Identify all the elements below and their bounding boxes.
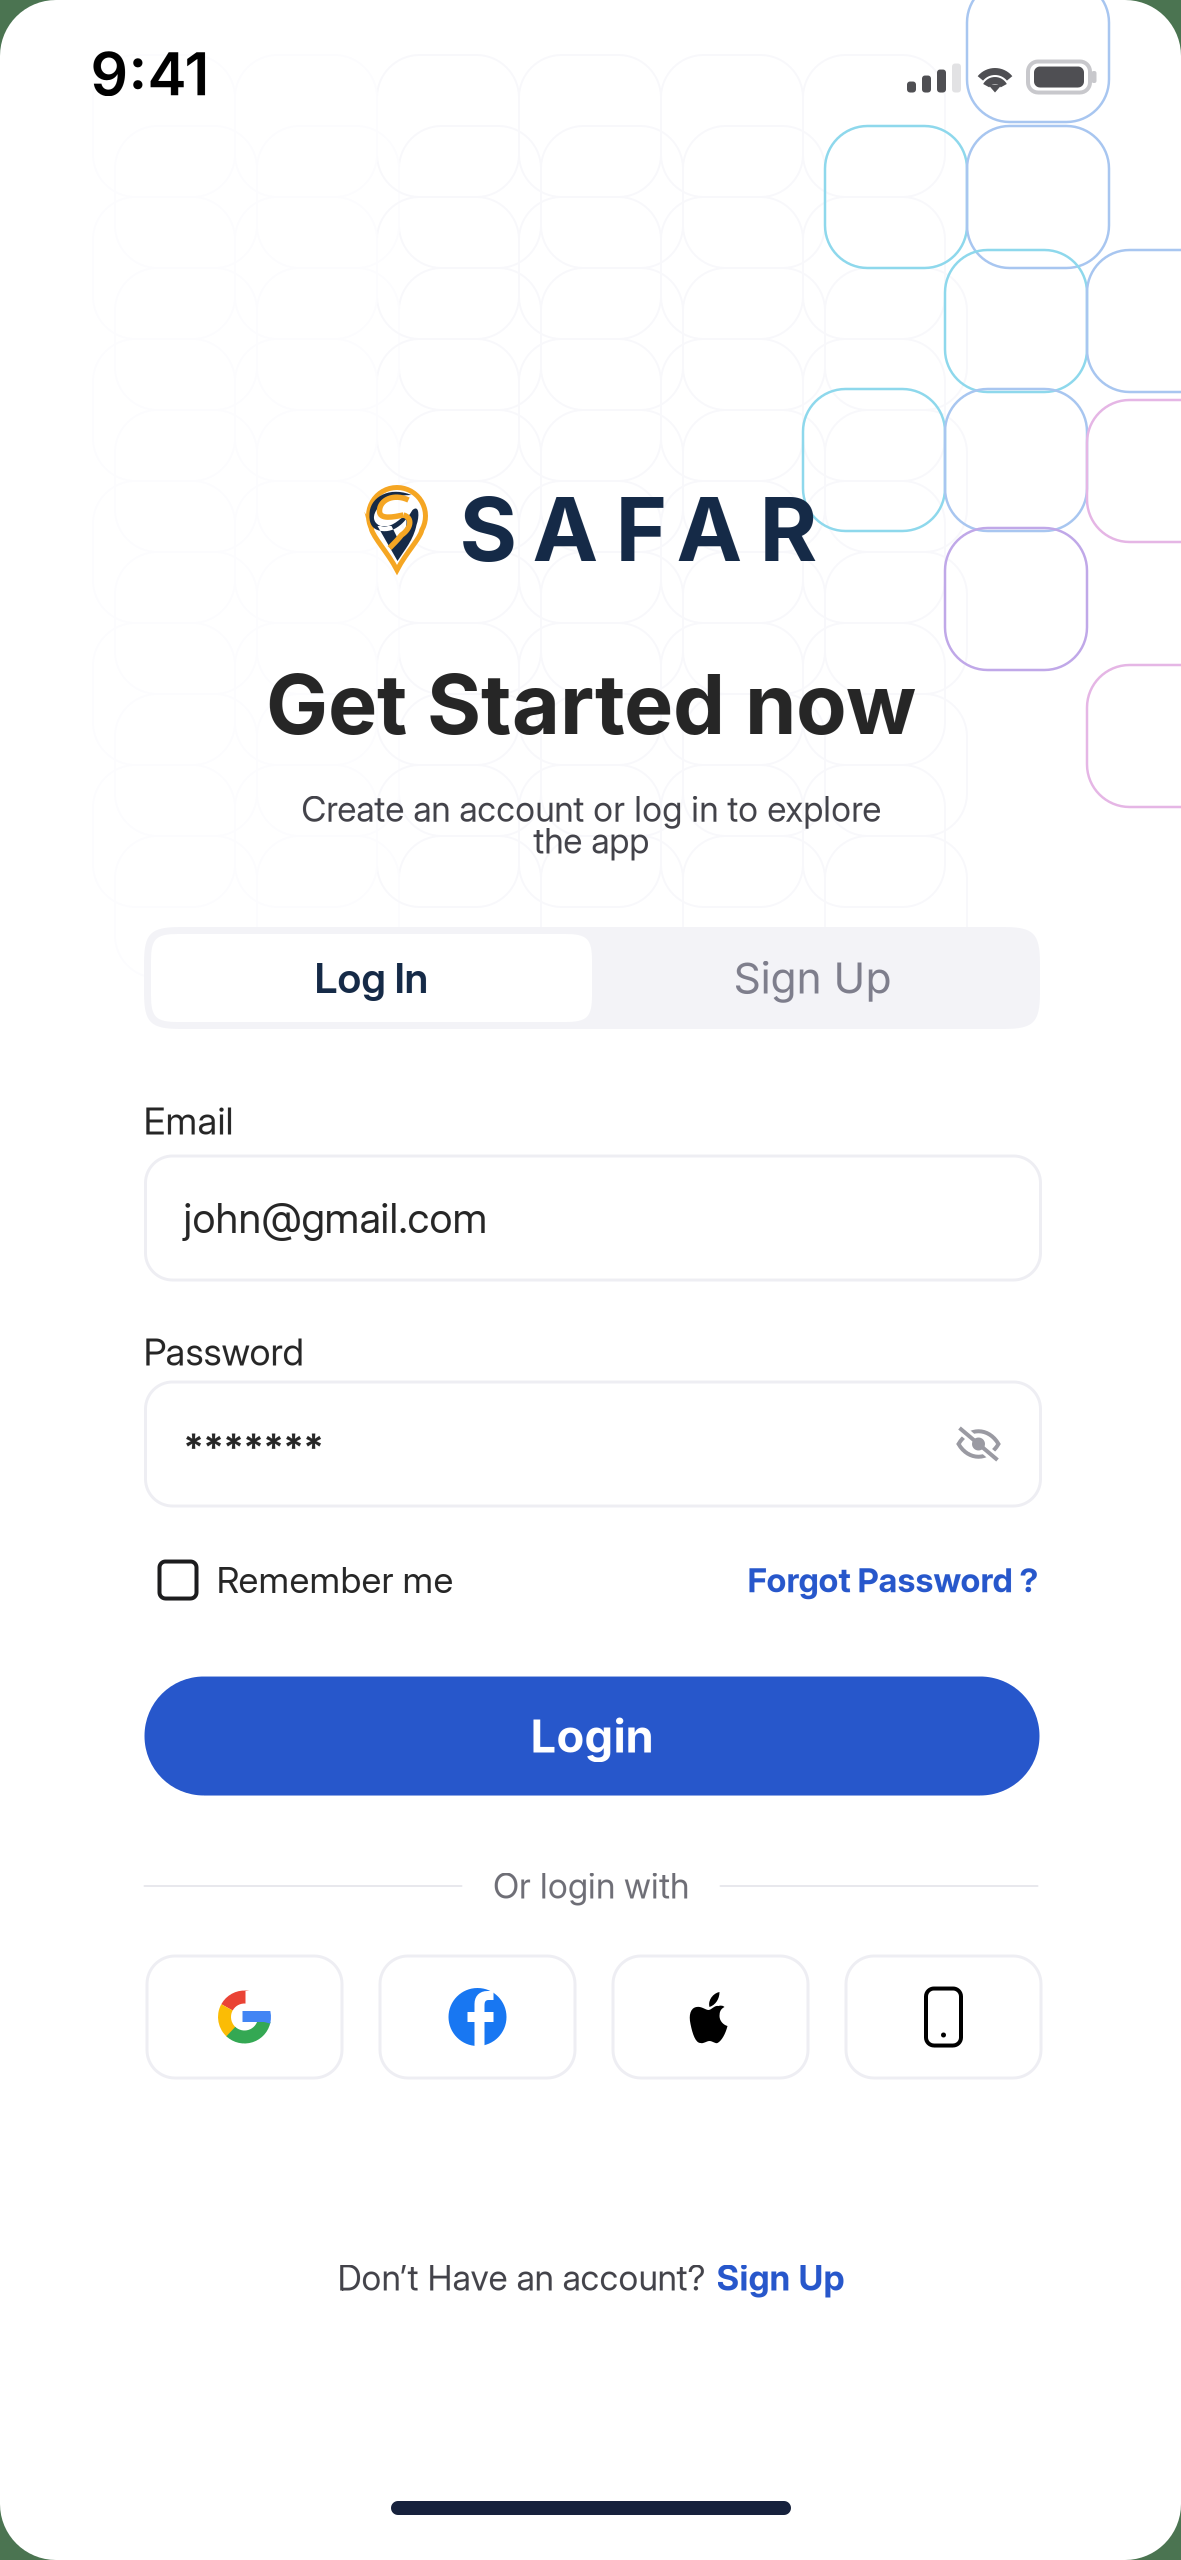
button[interactable]: Show password: [956, 1425, 1000, 1463]
staticText: Sign Up: [716, 2257, 844, 2299]
staticText: Email: [143, 1098, 233, 1144]
button[interactable]: Forgot Password ?: [747, 1560, 1038, 1600]
button[interactable]: Don’t Have an account?: [337, 2257, 844, 2299]
staticText: Password: [143, 1329, 303, 1375]
button[interactable]: Remember me: [159, 1558, 453, 1602]
button[interactable]: Sign in with phone: [846, 1956, 1041, 2078]
staticText: Login: [530, 1709, 653, 1763]
staticText: Sign Up: [733, 952, 891, 1004]
staticText: Or login with: [493, 1865, 689, 1907]
button[interactable]: Sign in with Facebook: [380, 1956, 575, 2078]
staticText: Create an account or log in to explore t…: [301, 788, 881, 862]
button[interactable]: Sign Up: [592, 934, 1033, 1022]
button[interactable]: Sign in with Apple: [613, 1956, 808, 2078]
staticText: Don’t Have an account?: [337, 2257, 705, 2299]
button[interactable]: Sign in with Google: [147, 1956, 342, 2078]
staticText: Get Started now: [266, 654, 916, 754]
staticText: 9:41: [90, 38, 209, 109]
staticText: Remember me: [216, 1558, 453, 1602]
staticText: *******: [183, 1424, 323, 1470]
staticText: Forgot Password ?: [747, 1560, 1038, 1600]
button[interactable]: Login: [144, 1676, 1039, 1795]
button[interactable]: Log In: [151, 934, 592, 1022]
staticText: Log In: [314, 953, 428, 1003]
staticText: john@gmail.com: [183, 1193, 487, 1243]
staticText: SAFAR: [459, 476, 817, 582]
